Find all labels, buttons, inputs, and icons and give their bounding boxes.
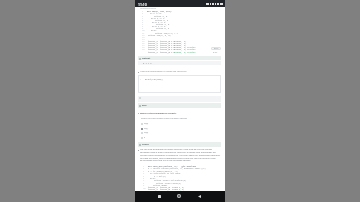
staticText: shape <box>174 42 181 45</box>
staticText: x = act(x) <box>154 175 167 178</box>
staticText: shape <box>174 40 181 43</box>
staticText: 15 <box>142 40 145 43</box>
staticText: 3) <box>184 48 187 51</box>
staticText: else: <box>151 29 158 32</box>
staticText: 2, <box>180 46 183 49</box>
staticText: 1.0 <box>171 40 175 43</box>
button[interactable]: Home <box>175 192 183 200</box>
staticText: 1.0 <box>171 44 175 47</box>
staticText: tensor_b <box>160 46 170 49</box>
staticText: 6 <box>143 177 145 180</box>
button[interactable]: Recents <box>155 192 163 200</box>
staticText: 2, <box>180 40 183 43</box>
button[interactable]: Back <box>195 192 203 200</box>
staticText: Check <box>142 143 149 146</box>
staticText: O(n) <box>144 131 149 134</box>
staticText: 3) <box>184 46 187 49</box>
staticText: return model <box>153 184 168 187</box>
staticText: tensor_b <box>160 48 170 51</box>
staticText: 1.0 <box>171 46 175 49</box>
staticText: O(1) <box>144 127 149 130</box>
staticText: to make this work, then subsequently eve… <box>140 157 216 160</box>
button[interactable]: O(1) <box>141 127 149 130</box>
staticText: 9 <box>142 27 144 30</box>
staticText: 1 <box>140 78 142 81</box>
staticText: be compiled once and run in the compiled… <box>140 159 191 162</box>
staticText: 2, <box>179 188 182 191</box>
staticText: 2, <box>180 42 183 45</box>
staticText: tensor_b <box>160 188 170 191</box>
staticText: 3 <box>142 15 144 18</box>
staticText: 1 <box>142 10 144 13</box>
staticText: = <box>169 186 171 189</box>
staticText: 2 <box>142 12 144 15</box>
staticText: 1.0 <box>171 51 175 54</box>
staticText: tensor_b <box>160 42 170 45</box>
staticText: 7 <box>143 179 145 182</box>
staticText: shape <box>174 46 181 49</box>
staticText: elif n == 1: <box>151 17 166 20</box>
staticText: 1.0 <box>171 42 175 45</box>
staticText: return fib(n, a, b) <box>148 34 171 37</box>
staticText: x = tf.reduce_mean(x, -1) <box>148 170 179 173</box>
staticText: if activation is not None: <box>150 172 182 175</box>
staticText: 4 <box>143 172 145 175</box>
staticText: shape <box>174 44 181 47</box>
staticText: = <box>169 188 171 191</box>
staticText: tensor_a <box>148 186 158 189</box>
staticText: 5 <box>142 19 144 22</box>
staticText: variables inside a plain command to cons… <box>140 151 216 154</box>
staticText: 3) <box>184 40 187 43</box>
button[interactable]: Run cell <box>211 47 221 50</box>
staticText: 11:10 <box>138 2 147 7</box>
button[interactable]: x <box>141 136 146 139</box>
button[interactable]: O(n) <box>141 131 149 134</box>
staticText: 12 <box>142 34 145 37</box>
staticText: 10 <box>142 29 145 32</box>
staticText: 8 <box>142 25 144 28</box>
staticText: elif n == 2: <box>152 21 167 24</box>
staticText: if n == 0: <box>150 12 163 15</box>
staticText: 3) <box>184 44 187 47</box>
staticText: else: <box>150 177 157 180</box>
staticText: Which of the following is correct? <box>140 112 177 115</box>
staticText: 11 <box>142 32 145 35</box>
button[interactable]: Output <box>138 56 221 60</box>
staticText: 3) <box>182 186 185 189</box>
staticText: shape <box>174 51 181 54</box>
staticText: tensor_a <box>148 188 158 191</box>
staticText: 2, <box>180 48 183 51</box>
staticText: tensor_a <box>148 40 158 43</box>
staticText: 18 <box>142 46 145 49</box>
button[interactable]: Check <box>138 142 221 147</box>
staticText: elif n == 3: <box>152 25 167 28</box>
staticText: 7 <box>142 23 144 26</box>
staticText: 16 <box>142 42 145 45</box>
staticText: 1 <box>143 165 145 168</box>
staticText: return layers.Activation(x) <box>154 179 187 182</box>
staticText: return a, b <box>154 15 168 18</box>
staticText: = <box>169 42 171 45</box>
staticText: return a, b <box>156 23 170 26</box>
staticText: 1.0 <box>171 48 175 51</box>
staticText: 14 <box>142 38 145 41</box>
staticText: print(fib(100)) <box>145 78 164 81</box>
staticText: 13 <box>142 36 145 39</box>
staticText: 2, <box>179 186 182 189</box>
staticText: 3) <box>184 42 187 45</box>
staticText: x <box>144 136 146 139</box>
staticText: tensor_b <box>160 186 170 189</box>
staticText: return fib(n-1) + 1 <box>155 32 178 35</box>
staticText: Now use memoization to speed the recursi… <box>140 70 187 73</box>
button[interactable]: O(n) <box>141 122 149 125</box>
staticText: 6 <box>142 21 144 24</box>
staticText: RUN <box>214 47 219 50</box>
staticText: We can now accelerate the above function… <box>140 148 212 151</box>
staticText: tensor_a <box>148 42 158 45</box>
staticText: 2, <box>180 51 183 54</box>
staticText: 2, <box>180 44 183 47</box>
staticText: 4 <box>142 17 144 20</box>
button[interactable]: Run <box>138 103 221 108</box>
staticText: return layers.Drop(x) <box>156 182 182 185</box>
staticText: tensor_b <box>160 40 170 43</box>
